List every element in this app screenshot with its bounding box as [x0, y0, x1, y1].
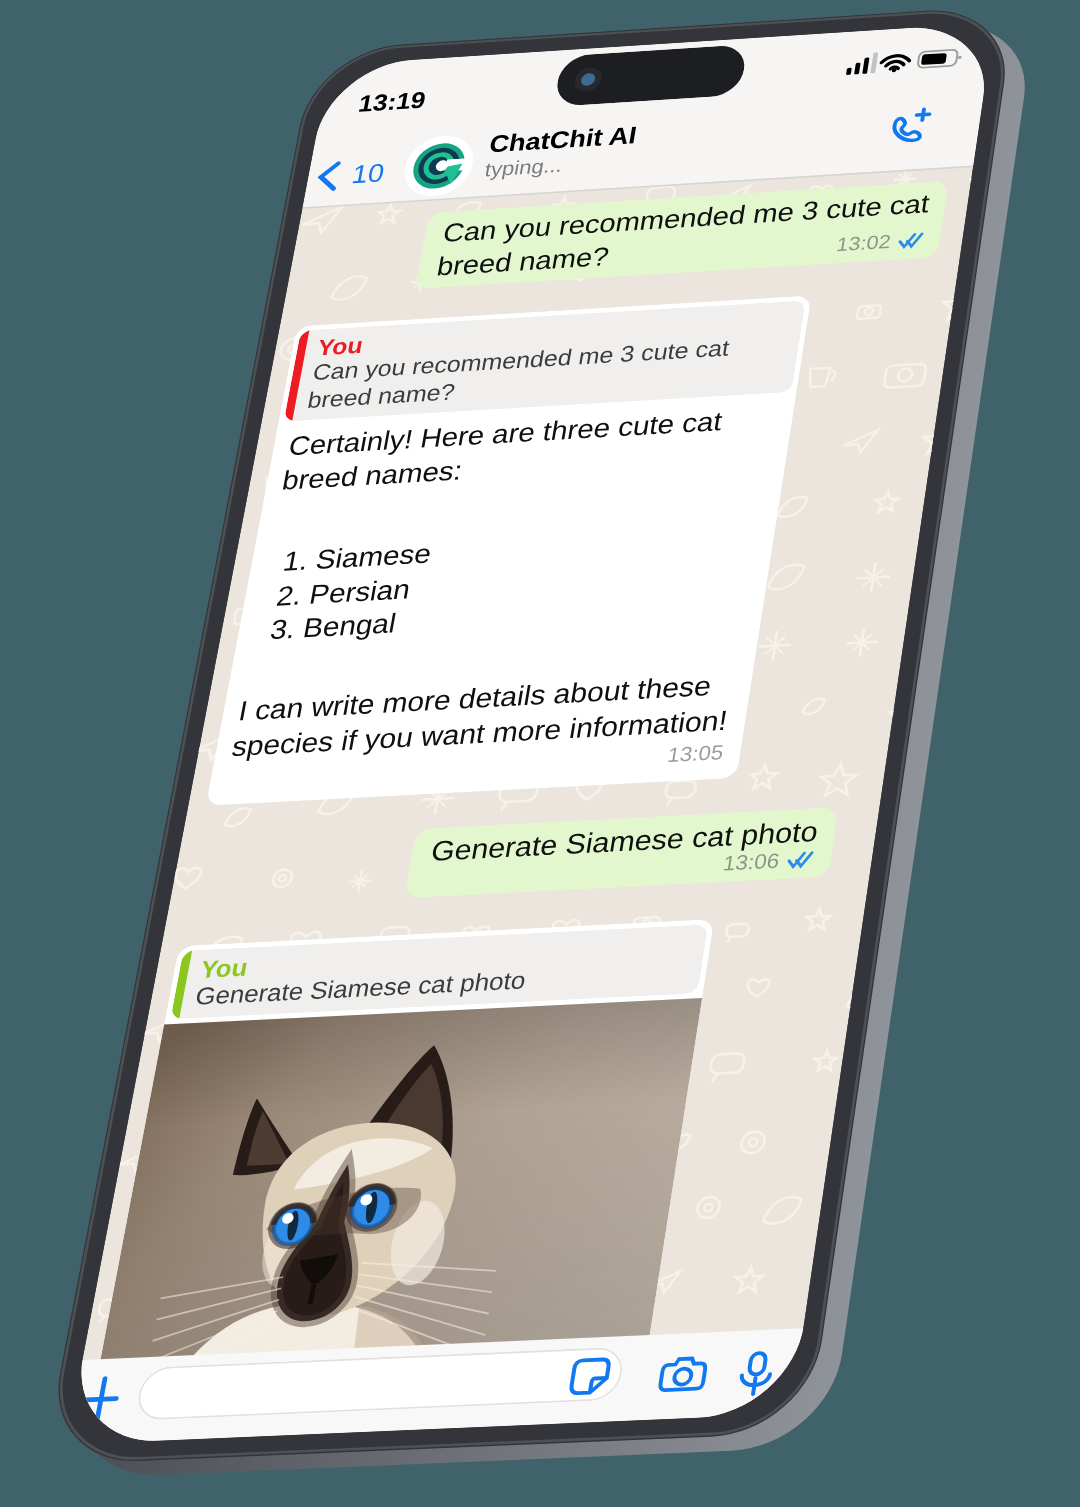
- staticText: I can write more details about these spe…: [19, 410, 301, 450]
- button[interactable]: You: [10, 562, 310, 812]
- button[interactable]: New call: [341, 54, 365, 77]
- button[interactable]: Generate Siamese cat photo: [133, 498, 370, 540]
- staticText: Generate Siamese cat photo: [144, 503, 361, 522]
- staticText: Can you recommended me 3 cute cat breed …: [25, 197, 299, 231]
- staticText: Can you recommended me 3 cute cat breed …: [87, 109, 371, 149]
- button[interactable]: [35, 810, 298, 840]
- button[interactable]: Can you recommended me 3 cute cat breed …: [76, 104, 380, 154]
- staticText: 13:05: [269, 454, 301, 468]
- staticText: Certainly! Here are three cute cat breed…: [19, 243, 301, 283]
- button[interactable]: You: [10, 174, 310, 477]
